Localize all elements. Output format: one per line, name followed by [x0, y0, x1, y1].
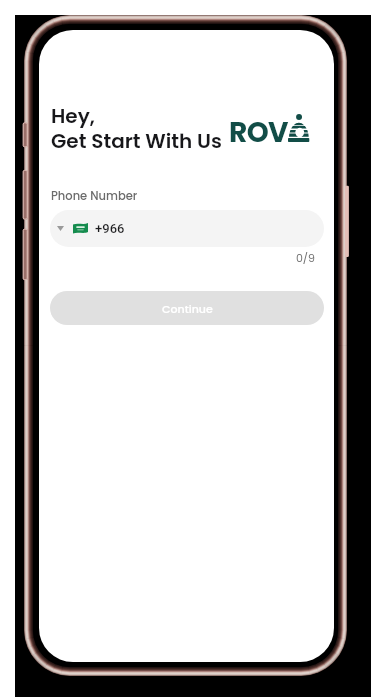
staticText: ROV	[229, 113, 288, 152]
staticText: 0/9	[39, 250, 315, 265]
other: Select country code	[57, 226, 64, 231]
staticText: Continue	[162, 301, 213, 316]
staticText: Hey,	[51, 102, 95, 130]
staticText: +966	[95, 221, 125, 236]
staticText: Phone Number	[51, 188, 138, 204]
button[interactable]: Continue	[50, 291, 324, 325]
button[interactable]: Select country code	[50, 210, 324, 247]
staticText: Get Start With Us	[51, 127, 222, 155]
